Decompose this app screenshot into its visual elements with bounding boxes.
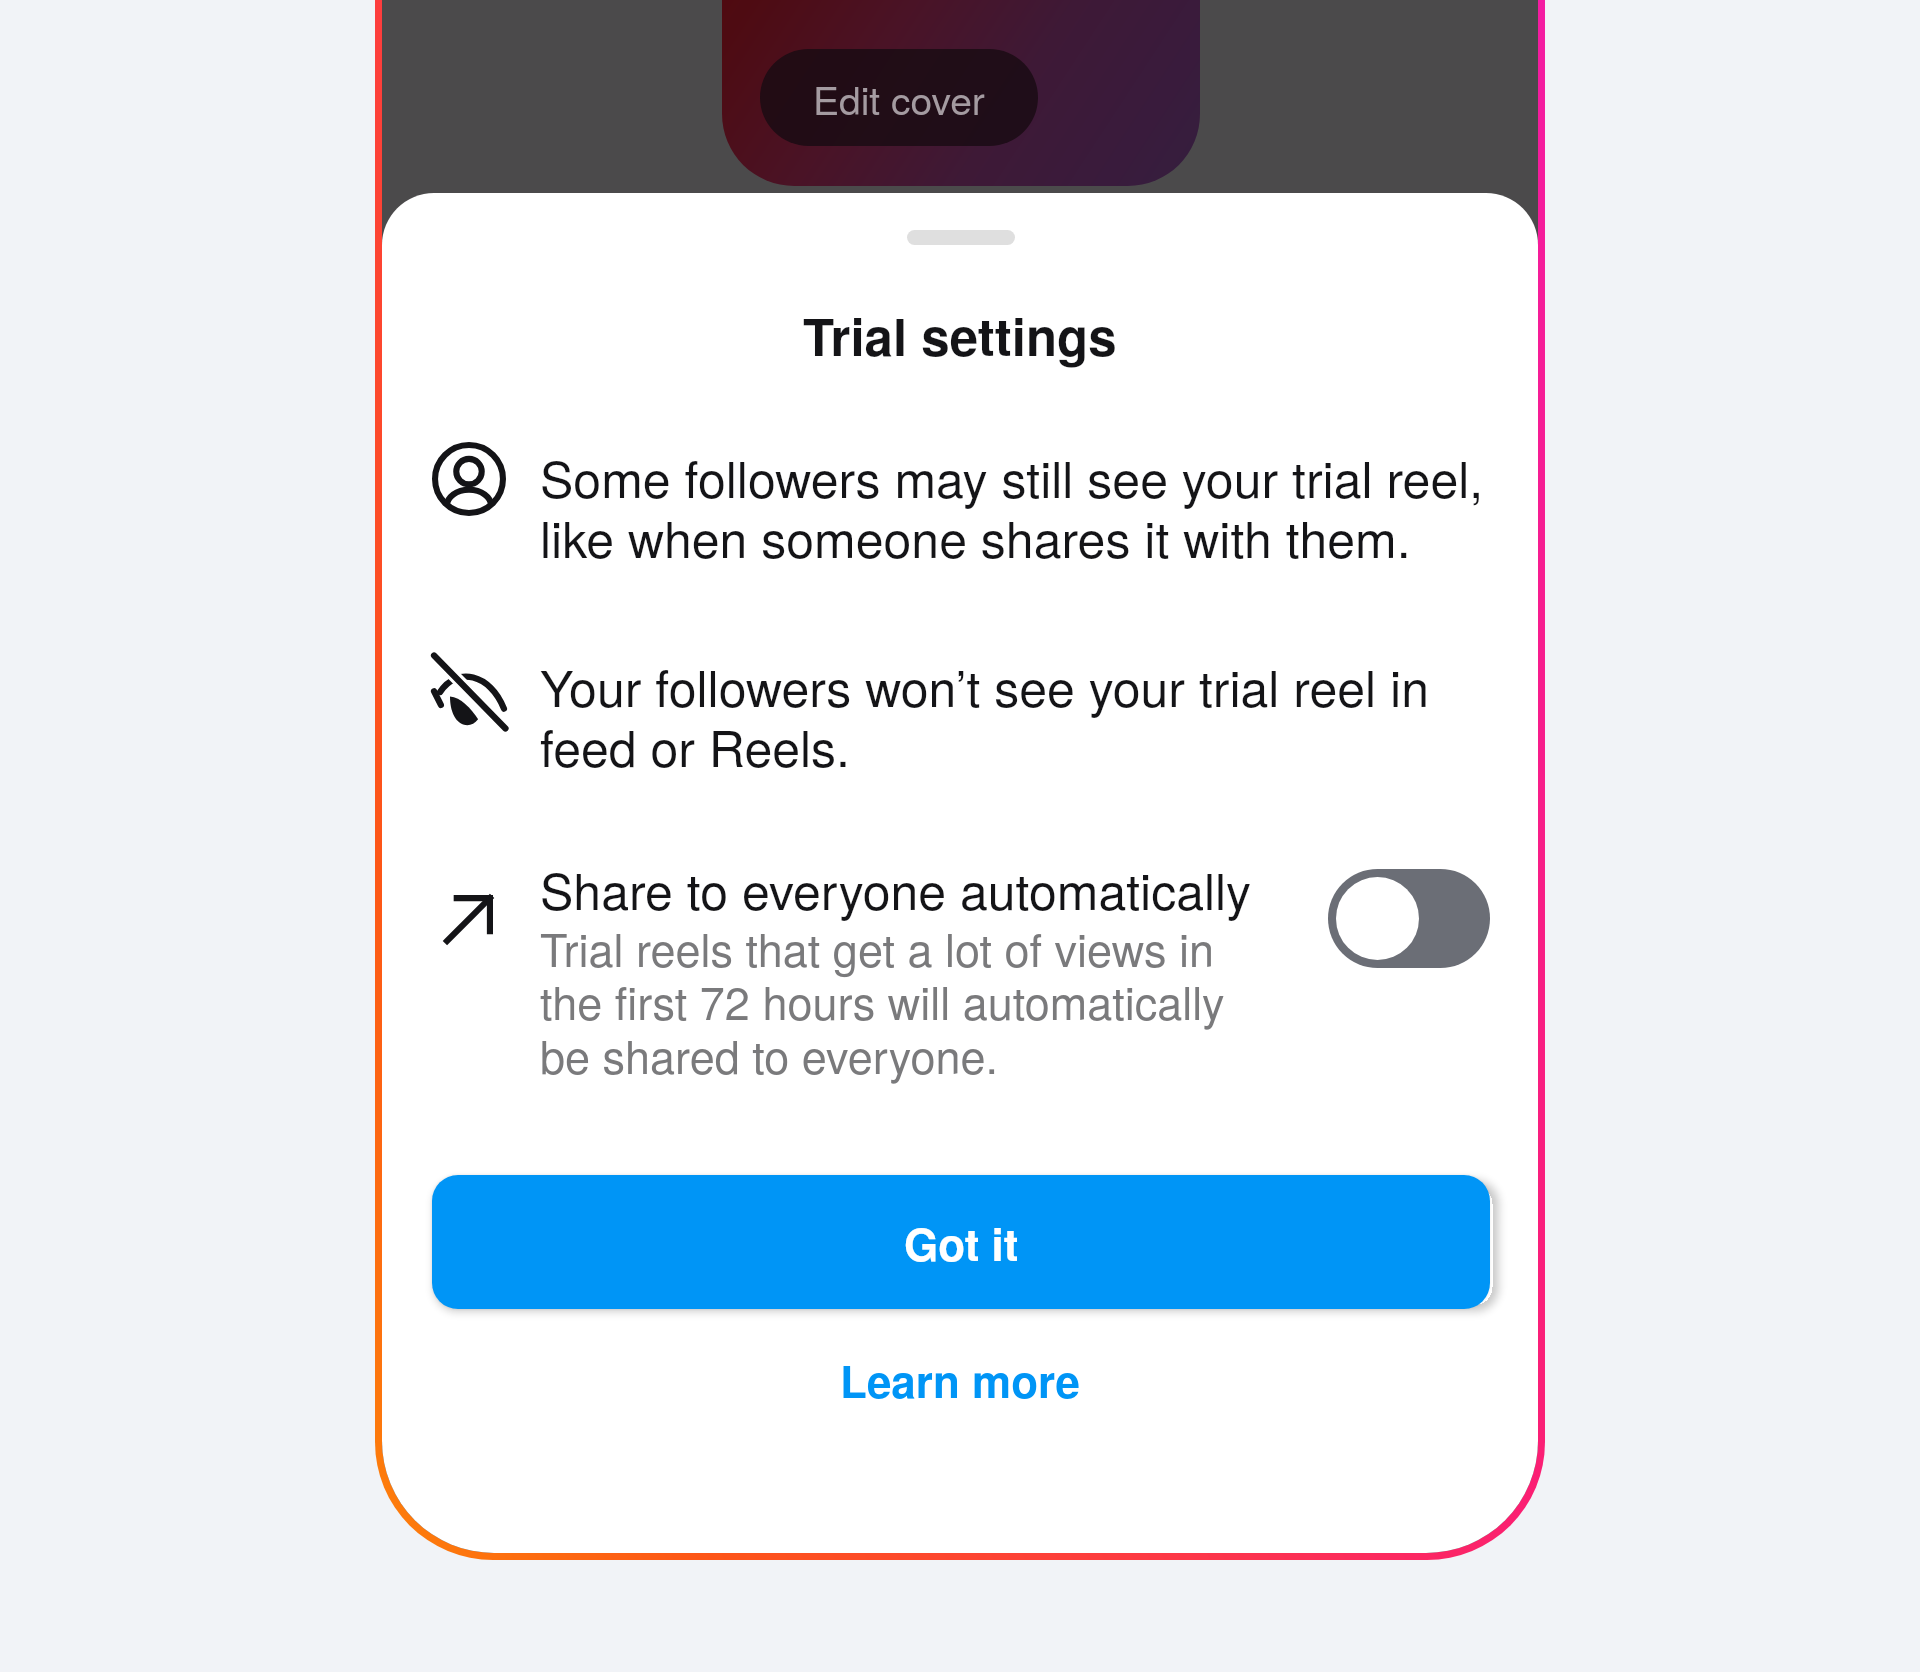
staticText: Trial reels that get a lot of views in t…	[540, 915, 1252, 1087]
staticText: Some followers may still see your trial …	[540, 441, 1500, 572]
staticText: Share to everyone automatically	[540, 853, 1251, 925]
staticText: Got it	[904, 1211, 1019, 1274]
button[interactable]: Learn more	[806, 1334, 1114, 1425]
staticText: Learn more	[840, 1348, 1080, 1411]
button[interactable]: Share to everyone automatically	[1328, 869, 1490, 968]
button[interactable]: Got it	[432, 1175, 1490, 1309]
staticText: Your followers won’t see your trial reel…	[540, 650, 1500, 781]
staticText: Edit cover	[813, 70, 985, 126]
button[interactable]: Edit cover	[760, 49, 1038, 146]
staticText: Trial settings	[803, 299, 1117, 372]
